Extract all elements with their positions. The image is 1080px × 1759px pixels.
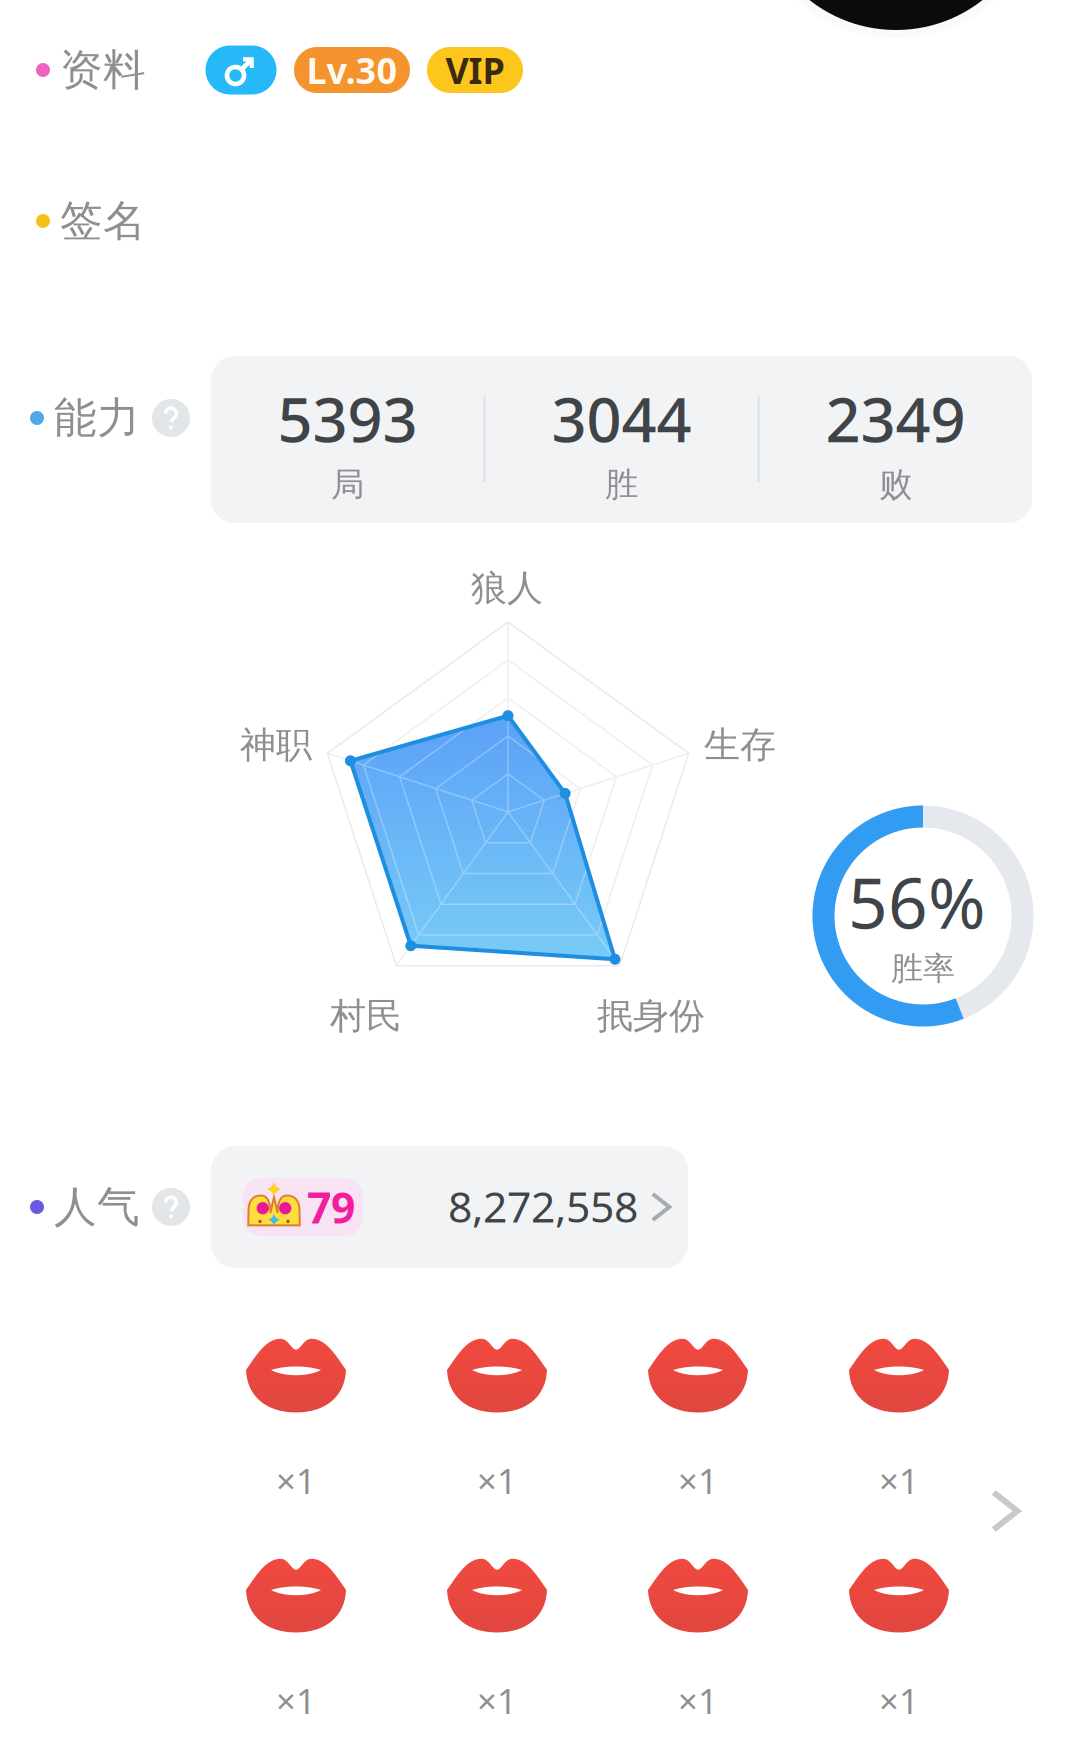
button[interactable]: 79 xyxy=(211,1146,688,1268)
staticText: 能力 xyxy=(54,392,140,444)
staticText: 2349 xyxy=(825,378,965,459)
staticText: 生存 xyxy=(704,723,776,767)
staticText: 胜率 xyxy=(891,949,955,988)
staticText: 狼人 xyxy=(471,566,543,610)
button[interactable]: Gender male xyxy=(205,45,276,94)
staticText: 村民 xyxy=(330,994,402,1038)
staticText: ×1 xyxy=(276,1677,316,1723)
staticText: 抿身份 xyxy=(597,994,705,1038)
staticText: 签名 xyxy=(60,195,146,247)
staticText: 56% xyxy=(848,856,986,948)
button[interactable]: Gift xyxy=(613,1324,783,1514)
staticText: 胜 xyxy=(605,464,638,505)
staticText: ×1 xyxy=(678,1677,718,1723)
staticText: 神职 xyxy=(240,723,312,767)
button[interactable]: Gift xyxy=(814,1324,984,1514)
staticText: ×1 xyxy=(879,1457,919,1503)
button[interactable]: Gift xyxy=(412,1324,582,1514)
staticText: ×1 xyxy=(276,1457,316,1503)
staticText: VIP xyxy=(445,46,504,94)
button[interactable]: Gift xyxy=(412,1544,582,1734)
staticText: 局 xyxy=(331,464,364,505)
staticText: 资料 xyxy=(60,44,146,96)
button[interactable]: Gift xyxy=(211,1544,381,1734)
button[interactable]: 签名 xyxy=(36,195,146,247)
staticText: 5393 xyxy=(277,378,417,459)
button[interactable]: 能力 xyxy=(30,392,190,444)
button[interactable]: More gifts xyxy=(984,1482,1030,1540)
button[interactable]: 人气 xyxy=(30,1181,190,1233)
button[interactable]: VIP xyxy=(427,47,523,93)
staticText: 败 xyxy=(879,464,912,505)
button[interactable]: Gift xyxy=(814,1544,984,1734)
staticText: 8,272,558 xyxy=(448,1178,638,1234)
button[interactable]: 资料 xyxy=(36,44,146,96)
staticText: Lv.30 xyxy=(306,46,397,94)
button[interactable]: Lv.30 xyxy=(294,47,410,93)
staticText: 人气 xyxy=(54,1181,140,1233)
staticText: 3044 xyxy=(551,378,691,459)
staticText: 79 xyxy=(307,1179,355,1235)
button[interactable]: Gift xyxy=(613,1544,783,1734)
staticText: ×1 xyxy=(477,1677,517,1723)
button[interactable]: Gift xyxy=(211,1324,381,1514)
staticText: ×1 xyxy=(477,1457,517,1503)
staticText: ×1 xyxy=(879,1677,919,1723)
staticText: ×1 xyxy=(678,1457,718,1503)
